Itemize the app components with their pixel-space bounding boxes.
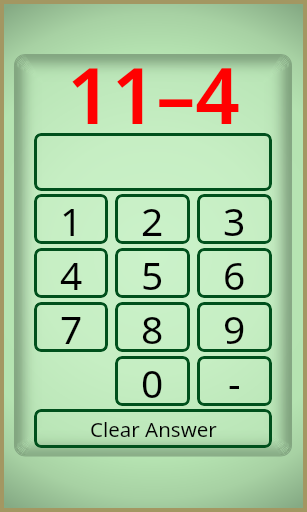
button[interactable]: - bbox=[197, 356, 272, 406]
button[interactable]: 0 bbox=[115, 356, 190, 406]
button[interactable]: 1 bbox=[34, 194, 108, 244]
button[interactable]: 8 bbox=[115, 302, 190, 352]
staticText: 5 bbox=[141, 248, 164, 298]
staticText: - bbox=[228, 356, 241, 406]
button[interactable]: 2 bbox=[115, 194, 190, 244]
button[interactable]: 4 bbox=[34, 248, 108, 298]
staticText: 2 bbox=[141, 194, 164, 244]
button[interactable]: 5 bbox=[115, 248, 190, 298]
button[interactable]: 6 bbox=[197, 248, 272, 298]
button[interactable]: 3 bbox=[197, 194, 272, 244]
button[interactable]: 9 bbox=[197, 302, 272, 352]
staticText: 9 bbox=[223, 302, 246, 352]
staticText: 7 bbox=[60, 302, 83, 352]
staticText: Clear Answer bbox=[90, 415, 217, 443]
staticText: 8 bbox=[141, 302, 164, 352]
staticText: 3 bbox=[223, 194, 246, 244]
staticText: 11–4 bbox=[67, 41, 240, 147]
staticText: 0 bbox=[141, 356, 164, 406]
staticText: 4 bbox=[60, 248, 83, 298]
staticText: 6 bbox=[223, 248, 246, 298]
button[interactable]: Clear Answer bbox=[34, 409, 272, 448]
button[interactable]: 7 bbox=[34, 302, 108, 352]
staticText: 1 bbox=[60, 194, 83, 244]
